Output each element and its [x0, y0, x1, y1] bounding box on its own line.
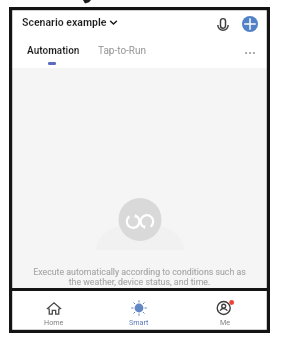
button[interactable]: Smart — [96, 291, 182, 331]
staticText: Me — [220, 318, 231, 326]
staticText: Home — [44, 318, 64, 326]
button[interactable]: More options — [238, 44, 262, 62]
staticText: Smart — [129, 318, 149, 326]
staticText: Scenario example — [22, 16, 107, 28]
button[interactable]: Voice control — [212, 15, 234, 33]
button[interactable]: Scenario example — [11, 14, 123, 30]
button[interactable]: Add scene — [239, 15, 261, 33]
staticText: Tap-to-Run — [98, 45, 147, 57]
button[interactable]: Me — [182, 291, 268, 331]
button[interactable]: Home — [11, 291, 96, 331]
staticText: Execute automatically according to condi… — [33, 267, 246, 287]
staticText: Automation — [27, 45, 80, 57]
button[interactable]: Tap-to-Run — [95, 45, 150, 57]
button[interactable]: Automation — [11, 45, 84, 65]
